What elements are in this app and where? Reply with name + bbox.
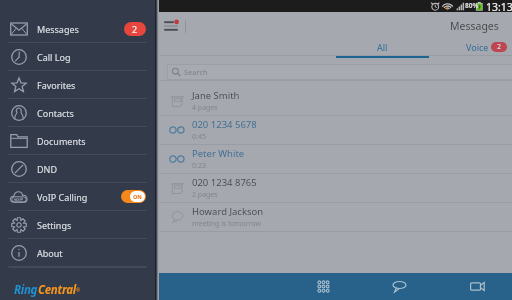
staticText: Howard Jackson (192, 205, 264, 218)
button[interactable]: Open navigation drawer (160, 12, 186, 39)
button[interactable]: Voice (463, 39, 512, 58)
button[interactable]: Documents (0, 127, 155, 154)
staticText: Voice (466, 41, 489, 53)
button[interactable]: Search (167, 64, 512, 80)
staticText: Central (38, 282, 76, 298)
button[interactable]: Messages (0, 15, 155, 42)
staticText: 80% (465, 1, 479, 10)
staticText: Contacts (37, 107, 74, 119)
staticText: Peter White (192, 147, 245, 160)
button[interactable]: Favorites (0, 71, 155, 98)
staticText: DND (37, 163, 57, 175)
staticText: All (377, 41, 388, 53)
staticText: ® (76, 287, 81, 294)
staticText: Search (184, 67, 208, 77)
button[interactable]: About (0, 239, 155, 266)
button[interactable]: Dialpad (301, 273, 345, 300)
button[interactable]: VoIP Calling (0, 183, 155, 210)
staticText: Documents (37, 135, 86, 147)
staticText: 020 1234 5678 (192, 118, 257, 131)
button[interactable]: VoIP Calling toggle (121, 190, 146, 203)
button[interactable]: Messages (377, 273, 421, 300)
button[interactable]: All (336, 39, 429, 58)
staticText: 0:45 (192, 132, 206, 142)
staticText: Jane Smith (192, 89, 240, 102)
button[interactable]: DND (0, 155, 155, 182)
button[interactable]: Settings (0, 211, 155, 238)
staticText: VoIP Calling (37, 191, 88, 203)
button[interactable]: Call Log (0, 43, 155, 70)
staticText: About (37, 247, 63, 259)
button[interactable]: Jane Smith (157, 86, 512, 115)
staticText: Settings (37, 219, 72, 231)
staticText: 0:23 (192, 161, 206, 171)
staticText: Favorites (37, 79, 76, 91)
staticText: ON (133, 193, 142, 200)
staticText: Messages (37, 23, 79, 35)
staticText: Messages (450, 19, 499, 33)
staticText: Call Log (37, 51, 71, 63)
staticText: 020 1234 8765 (192, 176, 257, 189)
staticText: 2 (497, 42, 502, 52)
staticText: 13:13 (486, 0, 512, 12)
staticText: Ring (14, 282, 38, 298)
staticText: 4 pages (192, 103, 218, 113)
button[interactable]: Contacts (0, 99, 155, 126)
staticText: 2 pages (192, 190, 218, 200)
staticText: meeting is tomorrow (192, 219, 261, 229)
button[interactable]: Video (455, 273, 499, 300)
staticText: 2 (132, 23, 138, 35)
button[interactable]: 020 1234 5678 (157, 116, 512, 144)
button[interactable]: Howard Jackson (157, 203, 512, 231)
button[interactable]: 020 1234 8765 (157, 174, 512, 202)
button[interactable]: Peter White (157, 145, 512, 173)
